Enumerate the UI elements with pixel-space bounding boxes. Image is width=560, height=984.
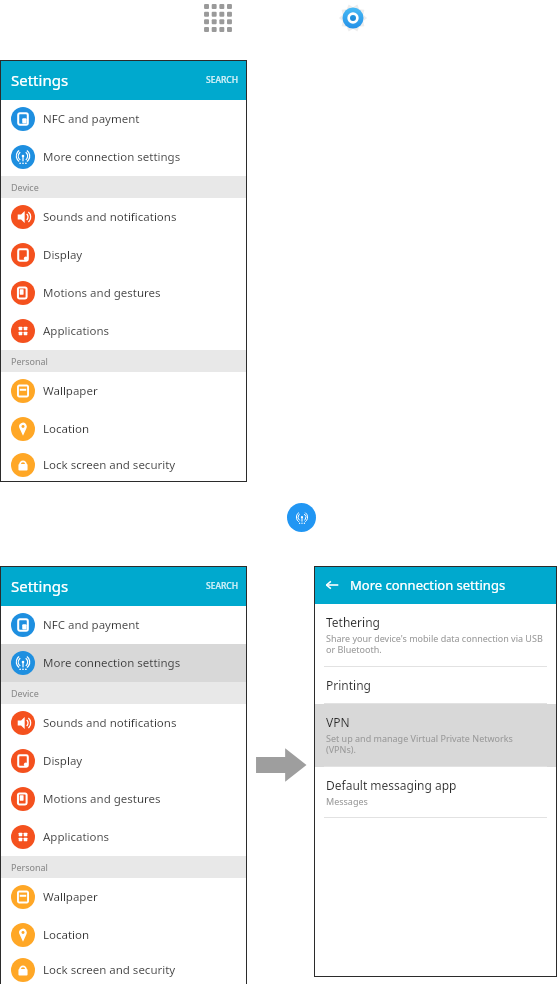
staticText: Display [43, 247, 83, 263]
staticText: Set up and manage Virtual Private Networ… [326, 732, 513, 756]
staticText: More connection settings [43, 149, 181, 165]
staticText: Motions and gestures [43, 791, 161, 807]
button[interactable]: Lock screen and security [0, 954, 247, 984]
staticText: Applications [43, 323, 110, 339]
button[interactable]: Display [0, 236, 247, 274]
button[interactable]: SEARCH [198, 70, 247, 90]
staticText: Default messaging app [326, 777, 457, 793]
staticText: Wallpaper [43, 889, 98, 905]
button[interactable]: Display [0, 742, 247, 780]
staticText: Personal [11, 355, 48, 367]
staticText: Settings [11, 70, 69, 90]
button[interactable]: Wallpaper [0, 372, 247, 410]
staticText: Lock screen and security [43, 457, 176, 473]
button[interactable]: NFC and payment [0, 100, 247, 138]
button[interactable]: Back [322, 575, 342, 595]
button[interactable]: Location [0, 410, 247, 448]
button[interactable]: Wallpaper [0, 878, 247, 916]
staticText: SEARCH [206, 74, 239, 86]
staticText: SEARCH [206, 580, 239, 592]
staticText: Share your device's mobile data connecti… [326, 632, 543, 656]
staticText: NFC and payment [43, 111, 140, 127]
button[interactable]: Motions and gestures [0, 780, 247, 818]
staticText: Display [43, 753, 83, 769]
staticText: Device [11, 181, 39, 193]
button[interactable]: Settings [335, 0, 371, 36]
staticText: More connection settings [43, 655, 181, 671]
button[interactable]: More connection settings [0, 138, 247, 176]
button[interactable]: Lock screen and security [0, 448, 247, 482]
staticText: NFC and payment [43, 617, 140, 633]
staticText: Device [11, 687, 39, 699]
staticText: Location [43, 421, 90, 437]
button[interactable]: Motions and gestures [0, 274, 247, 312]
staticText: More connection settings [350, 576, 506, 594]
staticText: Wallpaper [43, 383, 98, 399]
staticText: Personal [11, 861, 48, 873]
button[interactable]: NFC and payment [0, 606, 247, 644]
staticText: Sounds and notifications [43, 209, 177, 225]
staticText: Tethering [326, 614, 380, 630]
staticText: Applications [43, 829, 110, 845]
button[interactable]: Apps [200, 0, 236, 36]
button[interactable]: VPN [314, 704, 557, 767]
button[interactable]: Applications [0, 312, 247, 350]
button[interactable]: Printing [314, 667, 557, 704]
staticText: VPN [326, 714, 350, 730]
button[interactable]: More connection settings [287, 503, 316, 532]
button[interactable]: Location [0, 916, 247, 954]
button[interactable]: Tethering [314, 604, 557, 667]
staticText: Printing [326, 677, 371, 693]
staticText: Lock screen and security [43, 962, 176, 978]
staticText: Messages [326, 795, 368, 807]
button[interactable]: More connection settings [0, 644, 247, 682]
button[interactable]: Sounds and notifications [0, 198, 247, 236]
button[interactable]: Sounds and notifications [0, 704, 247, 742]
button[interactable]: SEARCH [198, 576, 247, 596]
staticText: Location [43, 927, 90, 943]
button[interactable]: Applications [0, 818, 247, 856]
staticText: Settings [11, 576, 69, 596]
staticText: Sounds and notifications [43, 715, 177, 731]
staticText: Motions and gestures [43, 285, 161, 301]
button[interactable]: Default messaging app [314, 767, 557, 818]
